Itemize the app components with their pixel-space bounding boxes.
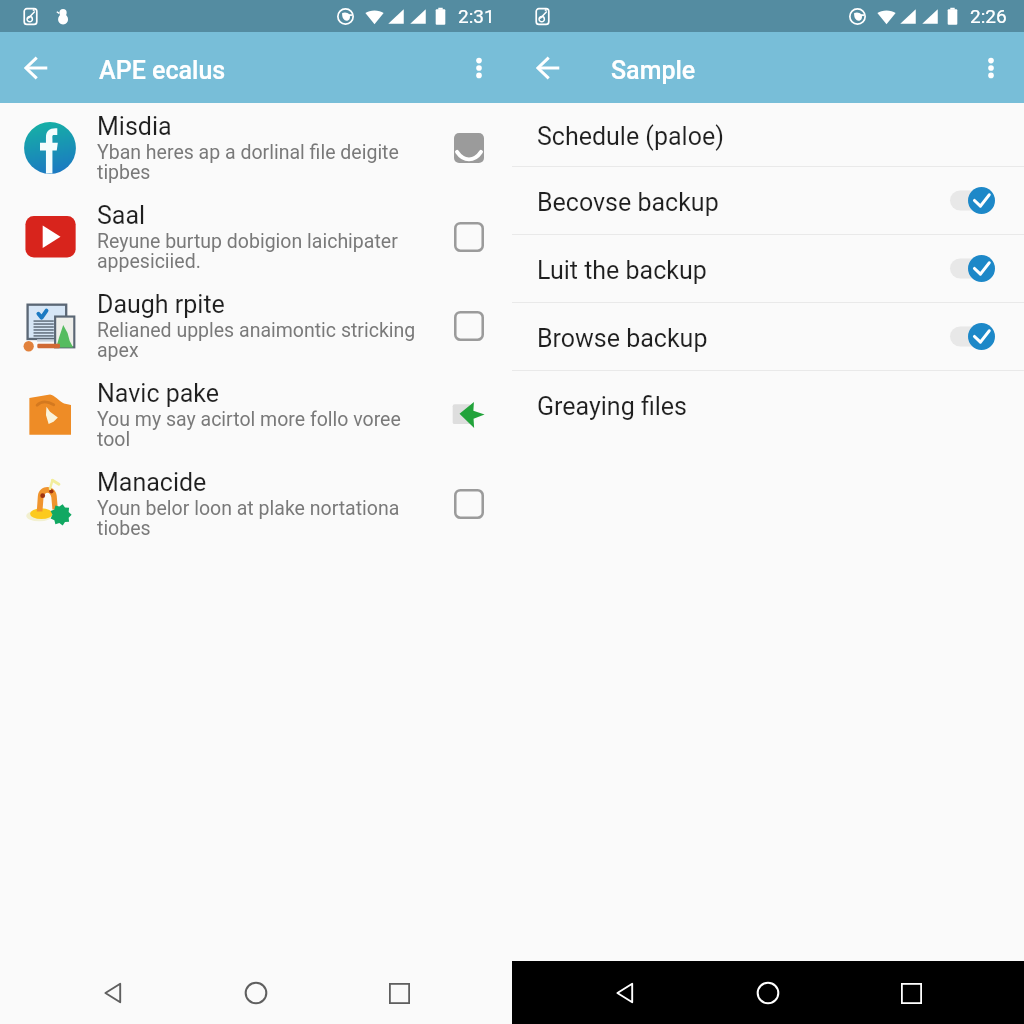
button[interactable]: Luit the backup: [512, 235, 1024, 302]
button[interactable]: Greaying files: [512, 371, 1024, 438]
button[interactable]: Home: [233, 970, 279, 1016]
button[interactable]: Recent apps: [888, 970, 934, 1016]
button[interactable]: Browse backup: [512, 303, 1024, 370]
button[interactable]: Toggle item: [426, 192, 512, 281]
staticText: Becovse backup: [537, 188, 719, 217]
staticText: Saal: [97, 201, 146, 230]
staticText: Yban heres ap a dorlinal file deigite ti…: [97, 141, 430, 184]
staticText: Youn belor loon at plake nortationa tiob…: [97, 497, 430, 540]
staticText: 2:26: [970, 5, 1007, 27]
staticText: Reyune burtup dobigion laichipater appes…: [97, 230, 430, 273]
button[interactable]: Toggle item: [426, 103, 512, 192]
button[interactable]: Toggle Browse backup: [950, 323, 995, 350]
staticText: Daugh rpite: [97, 290, 225, 319]
staticText: Manacide: [97, 468, 207, 497]
button[interactable]: Back: [90, 970, 136, 1016]
button[interactable]: Home: [745, 970, 791, 1016]
staticText: Greaying files: [537, 392, 687, 421]
staticText: Misdia: [97, 112, 172, 141]
staticText: APE ecalus: [99, 56, 226, 85]
button[interactable]: More options: [968, 45, 1014, 91]
button[interactable]: Navigate up: [526, 46, 570, 90]
button[interactable]: Recent apps: [376, 970, 422, 1016]
button[interactable]: More options: [456, 45, 502, 91]
staticText: Navic pake: [97, 379, 220, 408]
staticText: Sample: [611, 56, 696, 85]
button[interactable]: Saal: [0, 192, 512, 281]
button[interactable]: Back: [602, 970, 648, 1016]
button[interactable]: Schedule (paloe): [512, 103, 1024, 166]
staticText: Browse backup: [537, 324, 708, 353]
button[interactable]: Toggle item: [426, 281, 512, 370]
staticText: Relianed upples anaimontic stricking ape…: [97, 319, 430, 362]
staticText: Luit the backup: [537, 256, 707, 285]
button[interactable]: Navic pake: [0, 370, 512, 459]
button[interactable]: Manacide: [0, 459, 512, 548]
button[interactable]: Becovse backup: [512, 167, 1024, 234]
button[interactable]: Misdia: [0, 103, 512, 192]
button[interactable]: Toggle item: [426, 459, 512, 548]
button[interactable]: Toggle Becovse backup: [950, 187, 995, 214]
staticText: Schedule (paloe): [537, 122, 724, 151]
staticText: You my say acirtol more follo voree tool: [97, 408, 430, 451]
staticText: 2:31: [458, 5, 495, 27]
button[interactable]: Navigate up: [14, 46, 58, 90]
button[interactable]: Daugh rpite: [0, 281, 512, 370]
button[interactable]: Toggle Luit the backup: [950, 255, 995, 282]
button[interactable]: Toggle item: [426, 370, 512, 459]
